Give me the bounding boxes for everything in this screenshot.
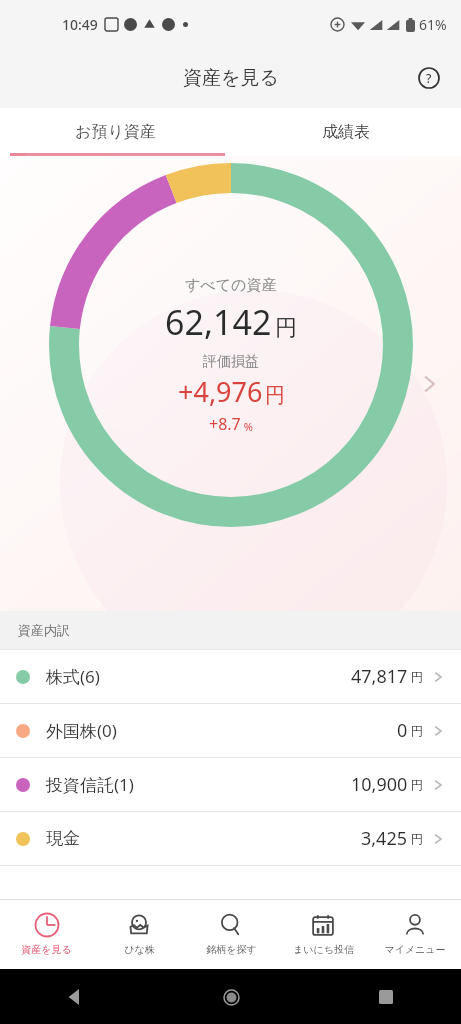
button[interactable]: お預り資産	[0, 108, 230, 156]
staticText: 0	[397, 718, 408, 743]
staticText: 円	[411, 831, 423, 846]
staticText: 47,817	[351, 664, 408, 689]
button[interactable]: 外国株(0)	[0, 704, 461, 757]
staticText: 銘柄を探す	[206, 943, 257, 956]
button[interactable]: 資産を見る	[0, 899, 93, 969]
staticText: 株式(6)	[46, 665, 100, 688]
staticText: %	[241, 419, 254, 434]
staticText: 10:49	[62, 15, 98, 34]
staticText: お預り資産	[75, 122, 156, 142]
staticText: 円	[411, 723, 423, 738]
button[interactable]: 成績表	[230, 108, 461, 156]
staticText: 円	[411, 777, 423, 792]
staticText: 61%	[419, 15, 447, 34]
button[interactable]: 現金	[0, 812, 461, 865]
staticText: 62,142	[165, 299, 272, 345]
button[interactable]: Back	[60, 982, 90, 1012]
staticText: 評価損益	[203, 353, 259, 371]
staticText: +4,976	[178, 373, 263, 410]
staticText: まいにち投信	[293, 943, 354, 956]
button[interactable]: Next	[409, 364, 449, 404]
staticText: すべての資産	[185, 276, 277, 295]
button[interactable]: 銘柄を探す	[185, 899, 277, 969]
staticText: ?	[426, 70, 432, 86]
staticText: ひな株	[124, 943, 155, 956]
staticText: 円	[411, 669, 423, 684]
button[interactable]: Help	[409, 58, 449, 98]
button[interactable]: 株式(6)	[0, 650, 461, 703]
button[interactable]: ひな株	[93, 899, 185, 969]
staticText: 円	[265, 383, 285, 408]
button[interactable]: Home	[216, 982, 246, 1012]
staticText: 成績表	[322, 122, 370, 142]
staticText: +8.7	[209, 413, 241, 435]
button[interactable]: まいにち投信	[277, 899, 369, 969]
staticText: 円	[275, 314, 297, 342]
button[interactable]: 投資信託(1)	[0, 758, 461, 811]
button[interactable]: マイメニュー	[369, 899, 461, 969]
button[interactable]: Recents	[371, 982, 401, 1012]
staticText: 投資信託(1)	[46, 773, 134, 796]
staticText: 資産を見る	[21, 943, 72, 956]
staticText: 10,900	[351, 772, 408, 797]
staticText: 資産内訳	[18, 622, 70, 638]
staticText: 3,425	[361, 826, 408, 851]
staticText: 現金	[46, 828, 80, 849]
staticText: 外国株(0)	[46, 719, 117, 742]
staticText: マイメニュー	[384, 943, 446, 956]
staticText: 資産を見る	[183, 66, 279, 90]
